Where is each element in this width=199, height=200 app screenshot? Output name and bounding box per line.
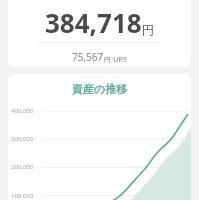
staticText: 200,000: [11, 163, 34, 171]
staticText: 75,567: [72, 50, 104, 64]
staticText: 円: [142, 22, 154, 37]
staticText: 400,000: [11, 107, 34, 115]
staticText: 100,000: [11, 192, 34, 200]
button[interactable]: 384,718: [8, 0, 191, 67]
staticText: 300,000: [11, 135, 34, 143]
button[interactable]: 資産の推移: [8, 74, 191, 200]
staticText: UP!!: [111, 54, 128, 64]
staticText: 資産の推移: [8, 82, 191, 96]
staticText: 円: [104, 55, 111, 64]
staticText: 384,718: [45, 5, 142, 40]
